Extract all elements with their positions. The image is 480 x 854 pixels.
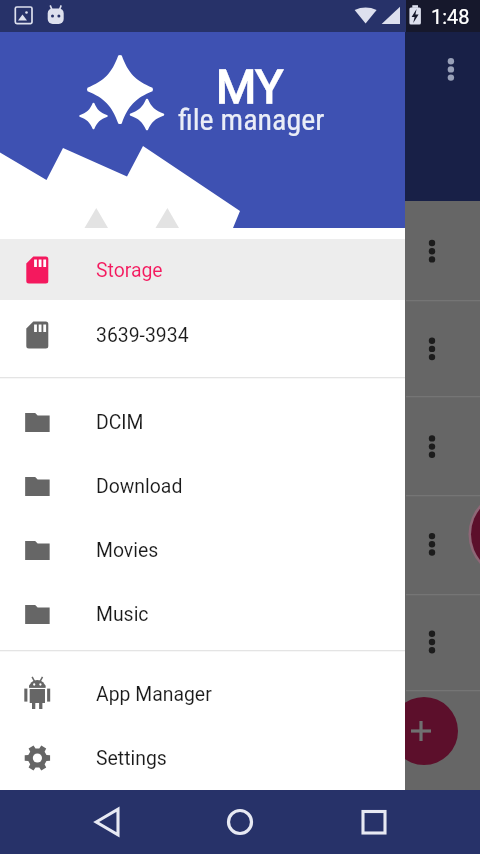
staticText: Download (96, 475, 183, 498)
button[interactable]: Movies (0, 518, 405, 582)
button[interactable]: Home (216, 798, 264, 846)
button[interactable]: App Manager (0, 662, 405, 726)
button[interactable]: Recents (350, 798, 398, 846)
staticText: Music (96, 603, 149, 626)
button[interactable]: 3639-3934 (0, 303, 405, 367)
staticText: 3639-3934 (96, 324, 189, 347)
button[interactable]: DCIM (0, 390, 405, 454)
staticText: DCIM (96, 411, 144, 434)
staticText: Movies (96, 539, 159, 562)
button[interactable]: Storage (0, 238, 405, 302)
button[interactable] (0, 239, 405, 300)
button[interactable]: Download (0, 454, 405, 518)
staticText: Storage (96, 259, 163, 282)
staticText: 1:48 (431, 5, 470, 28)
staticText: App Manager (96, 683, 212, 706)
button[interactable]: Settings (0, 726, 405, 790)
staticText: file manager (178, 102, 325, 137)
staticText: MY (216, 60, 284, 114)
button[interactable]: Music (0, 582, 405, 646)
staticText: Settings (96, 747, 167, 770)
button[interactable]: Back (83, 798, 131, 846)
